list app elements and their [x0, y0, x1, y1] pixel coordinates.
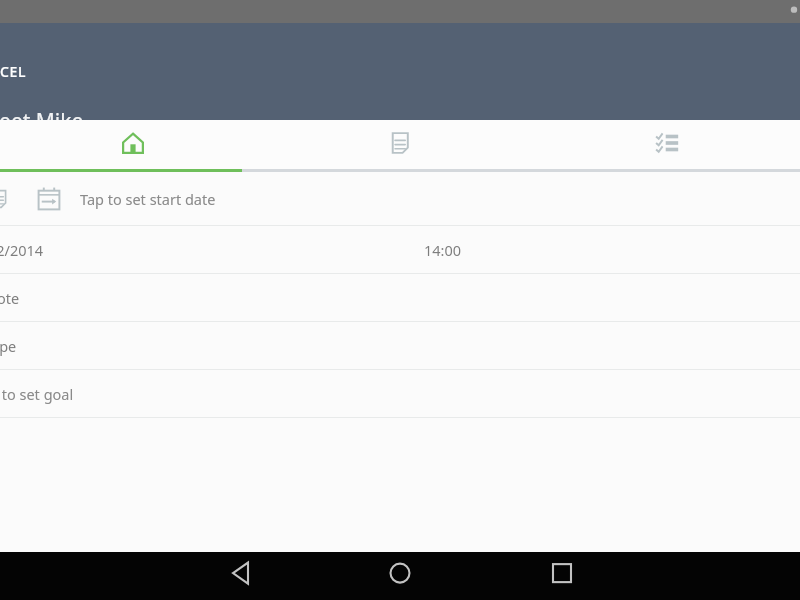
button[interactable]: Type: [0, 322, 800, 369]
button[interactable]: Tap to set start date: [0, 172, 800, 225]
button[interactable]: Note: [0, 274, 800, 321]
staticText: Type: [0, 336, 17, 356]
staticText: Tap to set start date: [80, 189, 216, 209]
button[interactable]: CANCEL: [0, 62, 29, 81]
button[interactable]: Home: [0, 120, 266, 172]
staticText: CANCEL: [0, 62, 27, 81]
staticText: 12/12/2014: [0, 240, 44, 260]
button[interactable]: Tap to set goal: [0, 370, 800, 417]
staticText: Note: [0, 288, 20, 308]
button[interactable]: Checklist: [533, 120, 800, 172]
staticText: Meet Mike: [0, 107, 84, 136]
staticText: 14:00: [424, 240, 462, 260]
button[interactable]: 12/12/2014: [0, 226, 800, 273]
button[interactable]: Notes: [266, 120, 533, 172]
staticText: Tap to set goal: [0, 384, 74, 404]
